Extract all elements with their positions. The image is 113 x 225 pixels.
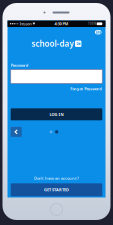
button[interactable]: Back — [11, 127, 22, 137]
button[interactable]: LOG IN — [11, 108, 102, 120]
staticText: 100% — [88, 22, 96, 25]
staticText: Don't have an account? — [34, 176, 79, 181]
button[interactable]: GET STARTED — [11, 183, 102, 196]
staticText: LOG IN — [49, 112, 63, 117]
staticText: EN — [96, 29, 101, 35]
button[interactable]: Forgot Password — [70, 86, 102, 91]
staticText: Forgot Password — [70, 86, 102, 91]
staticText: GET STARTED — [44, 187, 69, 192]
staticText: Password — [11, 62, 29, 68]
staticText: 24 — [76, 41, 80, 46]
staticText: 4:30 PM — [55, 21, 69, 26]
button[interactable]: Language — [95, 30, 101, 34]
staticText: school-day — [32, 38, 74, 49]
staticText: Intspan — [18, 21, 31, 26]
